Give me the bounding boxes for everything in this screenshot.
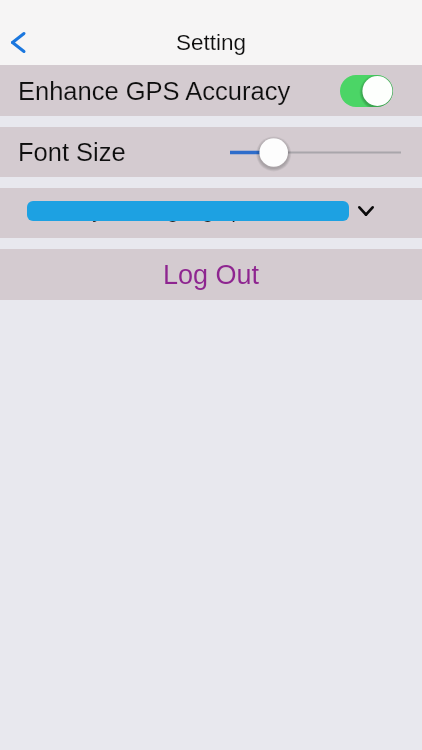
staticText: Font Size [18,138,126,166]
staticText: Enhance GPS Accuracy [18,77,291,105]
button[interactable]: Log Out [0,249,422,300]
button[interactable]: Back [0,20,34,64]
staticText: Select your language preference... [28,199,350,222]
staticText: Setting [176,30,247,55]
button[interactable]: Language selector [0,188,422,238]
button[interactable]: Font size slider [226,127,422,177]
staticText: Log Out [163,260,260,290]
button[interactable]: Enhance GPS accuracy, on [340,75,393,107]
